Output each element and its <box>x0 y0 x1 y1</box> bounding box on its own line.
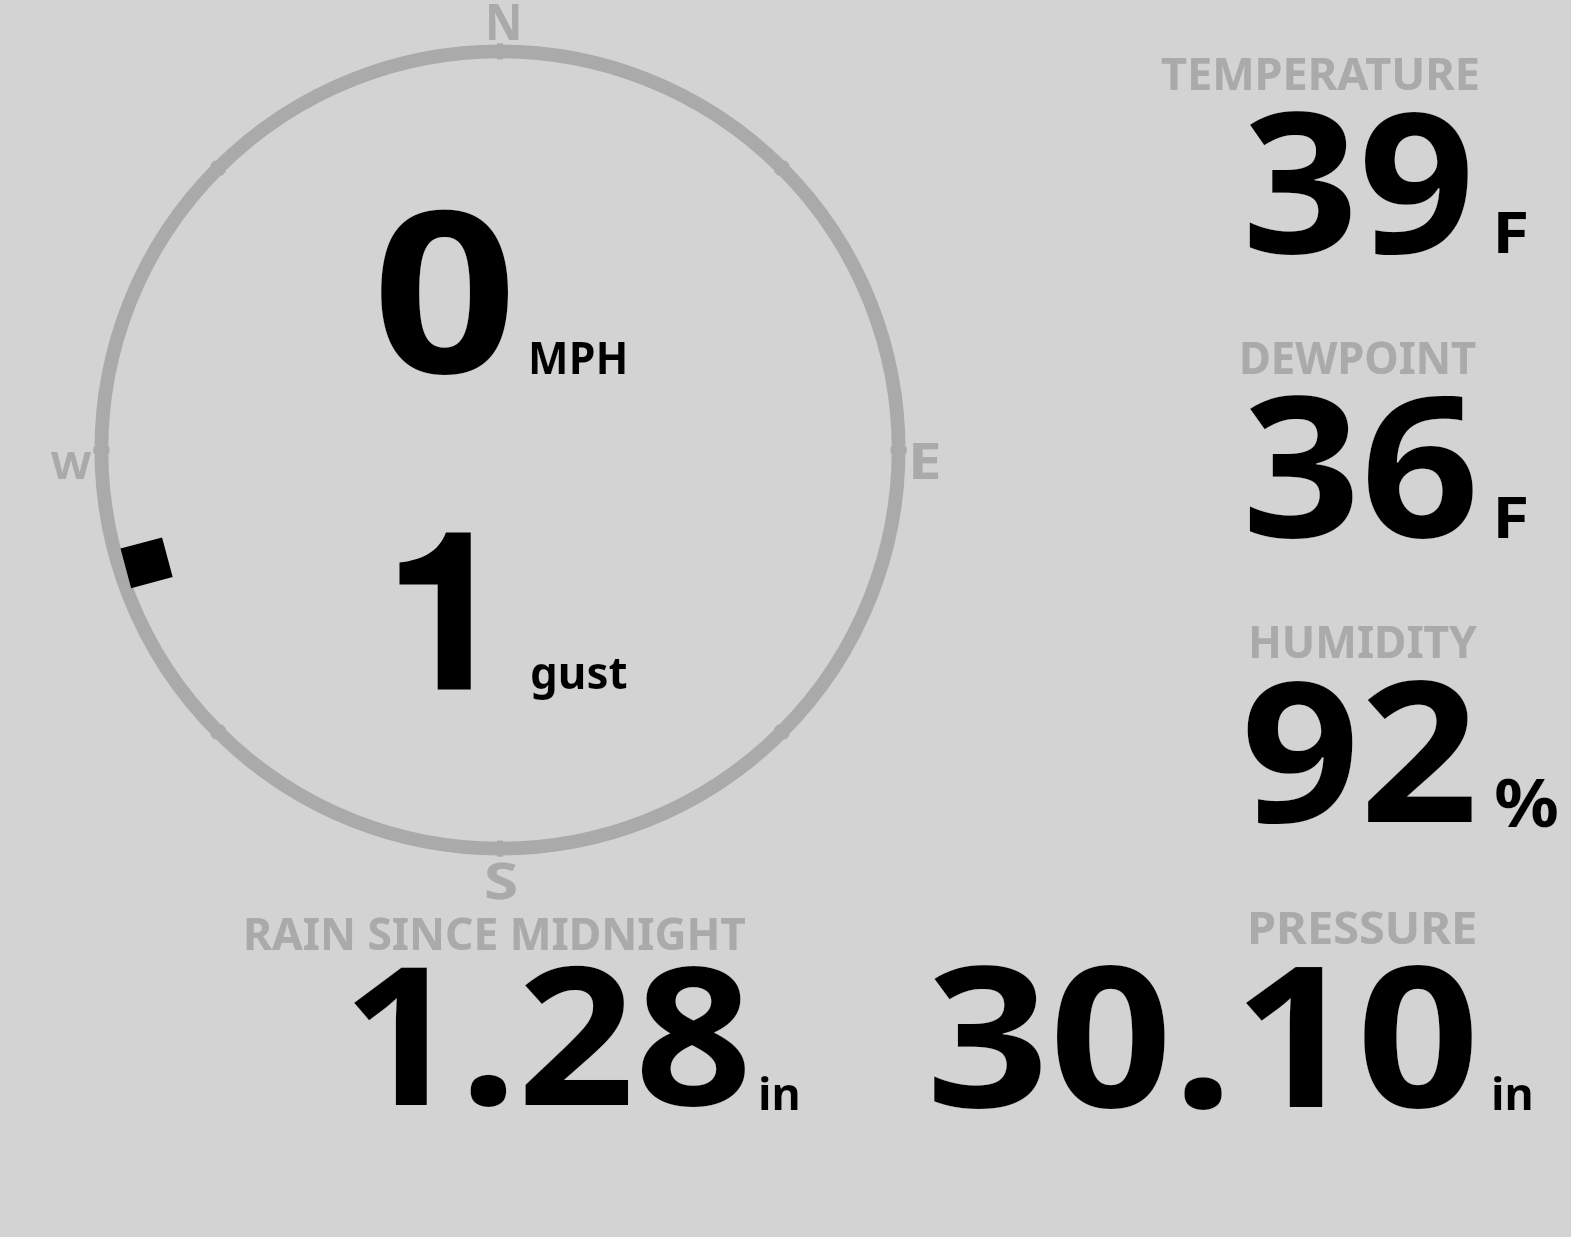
staticText: 92 <box>1241 612 1479 879</box>
staticText: E <box>908 426 942 494</box>
button[interactable]: Pressure 30.10 inches <box>905 904 1571 1119</box>
staticText: PRESSURE <box>1247 896 1477 957</box>
staticText: S <box>484 846 519 914</box>
staticText: N <box>485 0 523 55</box>
staticText: 0 <box>372 132 518 438</box>
staticText: 30.10 <box>926 897 1480 1164</box>
staticText: DEWPOINT <box>1239 326 1477 387</box>
staticText: % <box>1494 756 1560 846</box>
staticText: in <box>758 1062 801 1123</box>
staticText: 39 <box>1242 43 1476 310</box>
staticText: F <box>1492 476 1530 555</box>
staticText: RAIN SINCE MIDNIGHT <box>243 902 747 963</box>
button[interactable]: Humidity 92 percent <box>1140 619 1571 834</box>
button[interactable]: Dewpoint 36 F <box>1140 335 1571 550</box>
button[interactable]: Rain since midnight 1.28 inches <box>230 904 830 1119</box>
staticText: W <box>51 438 91 490</box>
staticText: in <box>1491 1062 1534 1123</box>
staticText: 36 <box>1242 327 1480 594</box>
button[interactable]: Wind speed and direction compass <box>94 44 906 856</box>
staticText: F <box>1492 191 1530 270</box>
button[interactable]: Temperature 39 F <box>1140 50 1571 265</box>
staticText: HUMIDITY <box>1248 610 1477 671</box>
staticText: MPH <box>528 326 629 387</box>
staticText: TEMPERATURE <box>1161 42 1480 103</box>
staticText: 1.28 <box>342 900 753 1162</box>
staticText: gust <box>530 641 628 702</box>
